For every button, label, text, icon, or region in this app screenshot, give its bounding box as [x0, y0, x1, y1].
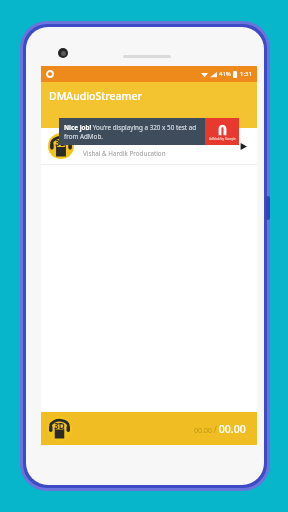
staticText: 41%: [219, 70, 231, 78]
staticText: 3D: [54, 420, 65, 431]
staticText: 1:31: [240, 70, 252, 78]
staticText: 3D: [55, 137, 67, 149]
button[interactable]: 3D: [41, 412, 257, 445]
staticText: Dilbar: [83, 134, 109, 146]
staticText: AdMob by Google: [209, 137, 236, 141]
staticText: 00.00 / 00.00: [194, 422, 246, 436]
staticText: DMAudioStreamer: [49, 89, 143, 103]
button[interactable]: Play Dilbar: [236, 139, 250, 153]
button[interactable]: 3D: [41, 128, 257, 164]
staticText: Nice job! You're displaying a 320 x 50 t…: [64, 123, 202, 141]
button[interactable]: AdMob test ad: [59, 118, 239, 145]
staticText: Vishal & Hardik Producation: [83, 149, 166, 158]
